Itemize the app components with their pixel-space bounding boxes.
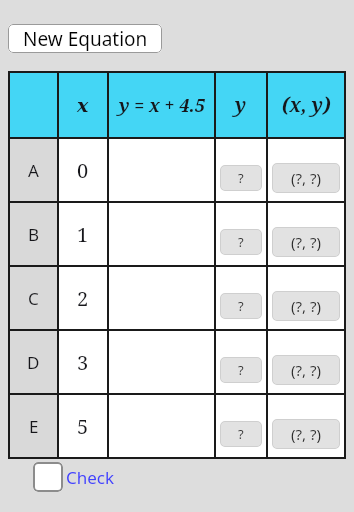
button[interactable]: (?, ?) bbox=[272, 291, 340, 321]
button[interactable]: (?, ?) bbox=[272, 163, 340, 193]
button[interactable]: ? bbox=[220, 229, 262, 255]
button[interactable]: ? bbox=[220, 293, 262, 319]
staticText: 1 bbox=[77, 221, 89, 248]
staticText: 3 bbox=[77, 349, 89, 376]
staticText: (?, ?) bbox=[291, 424, 321, 444]
button[interactable]: (?, ?) bbox=[272, 419, 340, 449]
staticText: ? bbox=[238, 297, 244, 315]
staticText: E bbox=[29, 415, 39, 438]
staticText: (?, ?) bbox=[291, 360, 321, 380]
button[interactable]: ? bbox=[220, 357, 262, 383]
button[interactable]: (?, ?) bbox=[272, 227, 340, 257]
staticText: ? bbox=[238, 361, 244, 379]
button[interactable]: (?, ?) bbox=[272, 355, 340, 385]
button[interactable]: Check bbox=[33, 462, 115, 492]
staticText: (x, y) bbox=[282, 92, 331, 118]
staticText: C bbox=[28, 287, 39, 310]
staticText: y = x + 4.5 bbox=[119, 93, 205, 118]
button[interactable]: New Equation bbox=[8, 24, 162, 53]
staticText: 2 bbox=[77, 285, 89, 312]
staticText: B bbox=[28, 223, 40, 246]
staticText: y bbox=[235, 92, 247, 118]
button[interactable]: ? bbox=[220, 165, 262, 191]
staticText: ? bbox=[238, 425, 244, 443]
staticText: ? bbox=[238, 233, 244, 251]
staticText: (?, ?) bbox=[291, 296, 321, 316]
staticText: ? bbox=[238, 169, 244, 187]
staticText: Check bbox=[66, 466, 115, 489]
staticText: 𝒙 bbox=[77, 94, 89, 116]
button[interactable]: ? bbox=[220, 421, 262, 447]
staticText: 0 bbox=[77, 157, 89, 184]
staticText: D bbox=[27, 351, 40, 374]
staticText: 5 bbox=[77, 413, 89, 440]
staticText: A bbox=[28, 159, 39, 182]
staticText: (?, ?) bbox=[291, 168, 321, 188]
staticText: (?, ?) bbox=[291, 232, 321, 252]
staticText: New Equation bbox=[23, 26, 148, 52]
